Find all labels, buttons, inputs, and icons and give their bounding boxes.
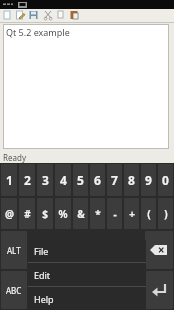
button[interactable]: Paste (69, 10, 81, 22)
button[interactable]: 5 (73, 164, 88, 196)
staticText: Ready (3, 152, 26, 163)
button[interactable]: Backspace (145, 231, 173, 269)
staticText: % (58, 207, 68, 221)
staticText: Qt 5.2 example (6, 26, 70, 38)
button[interactable]: ) (158, 198, 173, 229)
staticText: Help (34, 293, 54, 305)
staticText: 1 (6, 172, 13, 188)
button[interactable]: Save (28, 10, 40, 22)
staticText: ( (147, 207, 151, 221)
staticText: 3 (42, 172, 49, 188)
button[interactable]: ALT (1, 231, 27, 269)
staticText: 9 (145, 172, 152, 188)
staticText: # (24, 207, 31, 221)
button[interactable]: - (107, 198, 122, 229)
button[interactable]: 3 (37, 164, 53, 196)
button[interactable]: Cut (43, 10, 55, 22)
button[interactable]: File (28, 240, 146, 262)
button[interactable]: Copy (56, 10, 68, 22)
button[interactable]: Qt 5.2 example (3, 24, 169, 149)
button[interactable]: 2 (19, 164, 35, 196)
button[interactable]: 1 (1, 164, 17, 196)
button[interactable]: & (73, 198, 88, 229)
staticText: 0 (162, 172, 169, 188)
button[interactable]: Enter (145, 271, 173, 309)
button[interactable]: 8 (124, 164, 139, 196)
staticText: @ (5, 207, 14, 221)
button[interactable]: Open (15, 10, 27, 22)
staticText: File (34, 245, 49, 257)
staticText: ) (164, 207, 168, 221)
staticText: & (77, 207, 85, 221)
button[interactable]: @ (1, 198, 17, 229)
staticText: 7 (111, 172, 118, 188)
button[interactable]: 6 (90, 164, 105, 196)
button[interactable]: ( (141, 198, 156, 229)
staticText: 5 (77, 172, 84, 188)
button[interactable]: 0 (158, 164, 173, 196)
button[interactable]: $ (37, 198, 53, 229)
staticText: * (95, 207, 101, 221)
button[interactable]: Edit (28, 263, 146, 286)
staticText: 8 (128, 172, 135, 188)
button[interactable]: Help (28, 287, 146, 310)
staticText: + (129, 207, 135, 221)
button[interactable]: ABC (1, 271, 27, 309)
button[interactable]: 9 (141, 164, 156, 196)
button[interactable]: % (55, 198, 71, 229)
button[interactable]: New (2, 10, 14, 22)
staticText: $ (42, 207, 48, 221)
staticText: 2 (24, 172, 31, 188)
button[interactable]: + (124, 198, 139, 229)
staticText: ALT (7, 245, 21, 256)
staticText: Edit (34, 269, 51, 281)
staticText: ABC (6, 285, 22, 296)
button[interactable]: 4 (55, 164, 71, 196)
staticText: 6 (94, 172, 101, 188)
staticText: - (113, 207, 117, 221)
button[interactable]: * (90, 198, 105, 229)
staticText: 4 (60, 172, 67, 188)
button[interactable]: # (19, 198, 35, 229)
button[interactable]: 7 (107, 164, 122, 196)
